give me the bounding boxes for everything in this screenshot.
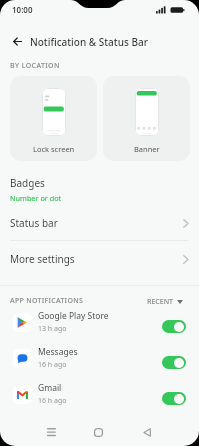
button[interactable]: Lock screen (10, 76, 97, 161)
staticText: More settings (10, 252, 75, 266)
staticText: 16 h ago (38, 360, 67, 370)
staticText: Banner (134, 144, 160, 154)
button[interactable] (162, 356, 186, 369)
staticText: RECENT (147, 297, 174, 307)
button[interactable] (39, 420, 63, 444)
button[interactable]: Messages (0, 340, 199, 376)
staticText: Badges (10, 176, 45, 190)
button[interactable]: Banner (103, 76, 190, 161)
staticText: Lock screen (33, 144, 75, 154)
button[interactable]: Gmail (0, 376, 199, 412)
button[interactable]: RECENT (143, 293, 187, 311)
staticText: 13 h ago (38, 324, 67, 334)
button[interactable] (162, 320, 186, 333)
staticText: 10:00 (12, 4, 33, 15)
staticText: Messages (38, 346, 78, 358)
button[interactable] (86, 420, 110, 444)
staticText: APP NOTIFICATIONS (10, 296, 84, 306)
button[interactable]: Badges (0, 172, 199, 207)
button[interactable] (162, 392, 186, 405)
staticText: 16 h ago (38, 396, 67, 406)
button[interactable]: Google Play Store (0, 304, 199, 340)
button[interactable] (135, 420, 159, 444)
button[interactable]: Status bar (0, 210, 199, 236)
staticText: Notification & Status Bar (30, 35, 148, 49)
staticText: BY LOCATION (10, 61, 60, 71)
staticText: Google Play Store (38, 310, 109, 322)
staticText: Gmail (38, 382, 62, 394)
staticText: Status bar (10, 216, 58, 230)
staticText: Number or dot (10, 193, 62, 203)
button[interactable] (6, 31, 30, 51)
button[interactable]: More settings (0, 246, 199, 272)
